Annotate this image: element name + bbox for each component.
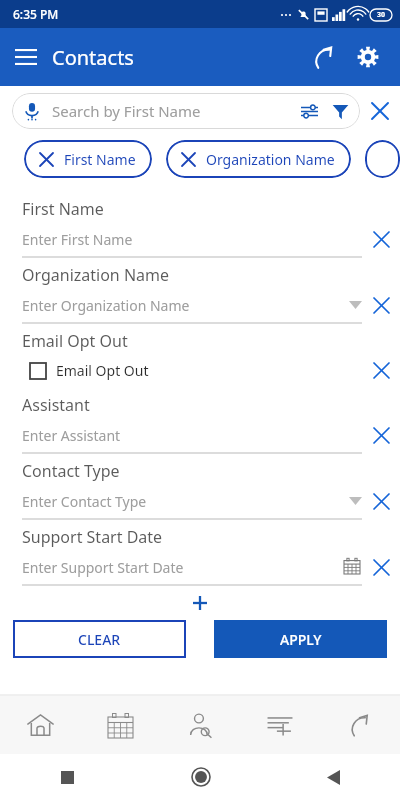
button[interactable]: Menu (6, 37, 46, 77)
staticText: First Name (22, 198, 104, 220)
button[interactable]: Home (134, 754, 267, 800)
button[interactable]: Enter Support Start Date (22, 548, 362, 586)
button[interactable]: Clear Email Opt Out (362, 352, 400, 388)
button[interactable]: Sort options (292, 94, 326, 128)
button[interactable]: Back (267, 754, 400, 800)
button[interactable]: Add filter (187, 592, 213, 614)
button[interactable]: Settings (346, 35, 390, 79)
staticText: First Name (64, 150, 136, 169)
staticText: Support Start Date (22, 526, 163, 548)
button[interactable]: Calendar (80, 696, 160, 754)
staticText: 6:35 PM (13, 6, 59, 22)
staticText: Enter Contact Type (22, 492, 147, 511)
button[interactable]: First Name (24, 140, 152, 178)
staticText: Organization Name (206, 150, 335, 169)
staticText: Contacts (52, 44, 134, 71)
button[interactable]: Filter (326, 94, 354, 128)
staticText: CLEAR (78, 630, 121, 649)
staticText: APPLY (280, 630, 322, 649)
button[interactable]: Email Opt Out (30, 361, 362, 380)
button[interactable]: Organization Name (166, 140, 351, 178)
button[interactable]: Clear Organization Name (362, 286, 400, 324)
button[interactable]: Recents (0, 754, 134, 800)
staticText: Organization Name (22, 264, 170, 286)
button[interactable]: Enter Organization Name (22, 286, 362, 324)
button[interactable]: New list (240, 696, 320, 754)
button[interactable]: Search contacts (160, 696, 240, 754)
staticText: Enter Assistant (22, 426, 121, 445)
button[interactable]: Share (302, 35, 346, 79)
button[interactable]: Clear Support Start Date (362, 548, 400, 586)
button[interactable]: CLEAR (13, 620, 186, 658)
button[interactable]: Enter First Name (22, 220, 362, 258)
staticText: Contact Type (22, 460, 120, 482)
button[interactable]: Clear Assistant (362, 416, 400, 454)
staticText: Enter First Name (22, 230, 133, 249)
staticText: Email Opt Out (22, 330, 128, 352)
staticText: Search by First Name (52, 101, 292, 121)
button[interactable] (365, 140, 400, 178)
button[interactable]: Share (320, 696, 400, 754)
button[interactable]: Enter Contact Type (22, 482, 362, 520)
staticText: Enter Support Start Date (22, 558, 184, 577)
staticText: Email Opt Out (56, 361, 149, 380)
button[interactable]: APPLY (214, 620, 387, 658)
staticText: 30 (377, 10, 386, 20)
staticText: Assistant (22, 394, 90, 416)
button[interactable]: Enter Assistant (22, 416, 362, 454)
staticText: Enter Organization Name (22, 296, 190, 315)
button[interactable]: Close search (360, 91, 400, 131)
button[interactable]: Pick date (344, 558, 362, 576)
button[interactable]: Search by First Name (12, 93, 360, 129)
button[interactable]: Clear Contact Type (362, 482, 400, 520)
button[interactable]: Clear First Name (362, 220, 400, 258)
button[interactable]: Home (0, 696, 80, 754)
